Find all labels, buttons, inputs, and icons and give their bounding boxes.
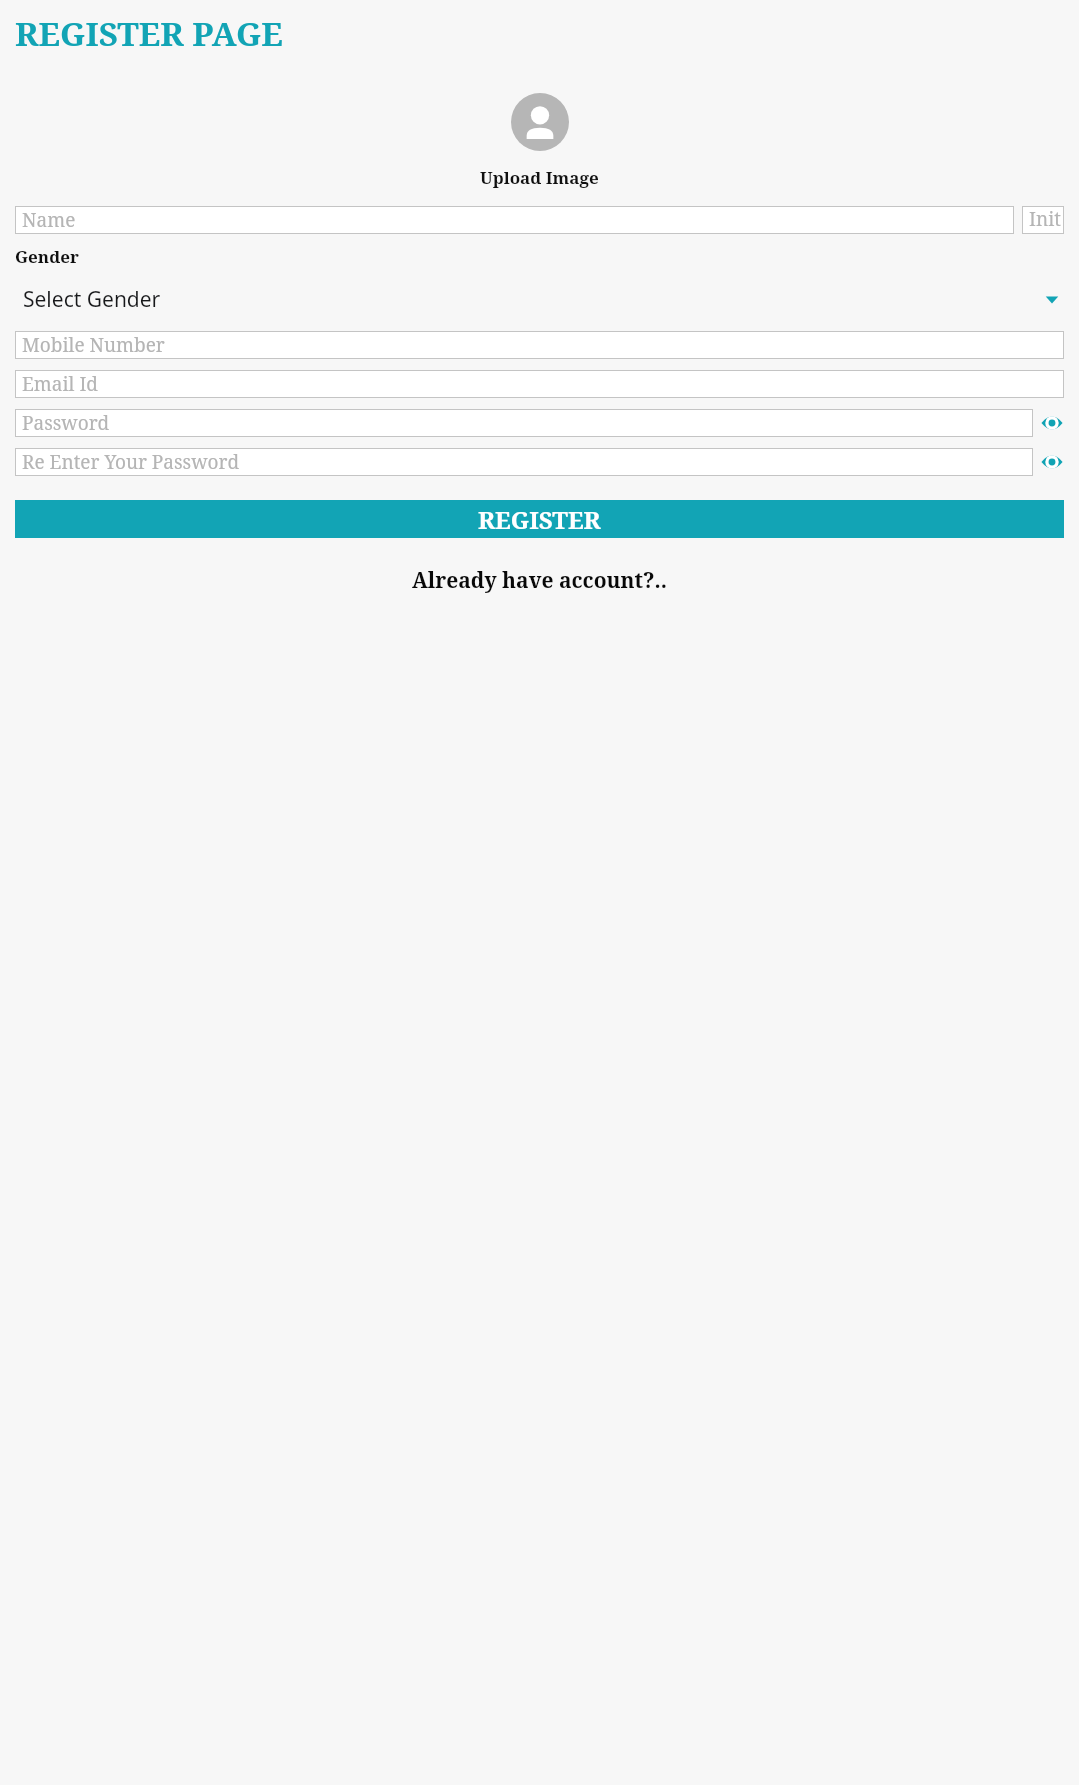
button[interactable]: Toggle password visibility xyxy=(1040,450,1064,474)
button[interactable]: Upload image xyxy=(511,93,569,151)
button[interactable]: Select Gender xyxy=(15,277,1064,322)
staticText: Mobile Number xyxy=(22,332,165,358)
button[interactable]: Password xyxy=(15,409,1033,437)
staticText: Name xyxy=(22,207,76,233)
button[interactable]: Already have account?.. xyxy=(412,566,667,595)
staticText: Re Enter Your Password xyxy=(22,449,240,475)
staticText: Upload Image xyxy=(480,166,599,189)
button[interactable]: Mobile Number xyxy=(15,331,1064,359)
button[interactable]: Name xyxy=(15,206,1014,234)
button[interactable]: Re Enter Your Password xyxy=(15,448,1033,476)
button[interactable]: REGISTER xyxy=(15,500,1064,538)
staticText: Email Id xyxy=(22,371,99,397)
button[interactable]: Initial xyxy=(1022,206,1064,234)
staticText: Select Gender xyxy=(23,285,161,314)
button[interactable]: Toggle password visibility xyxy=(1040,411,1064,435)
staticText: REGISTER xyxy=(478,503,601,536)
staticText: REGISTER PAGE xyxy=(15,11,283,56)
staticText: Password xyxy=(22,410,110,436)
button[interactable]: Email Id xyxy=(15,370,1064,398)
staticText: Gender xyxy=(15,245,79,268)
staticText: Initial xyxy=(1029,206,1064,234)
